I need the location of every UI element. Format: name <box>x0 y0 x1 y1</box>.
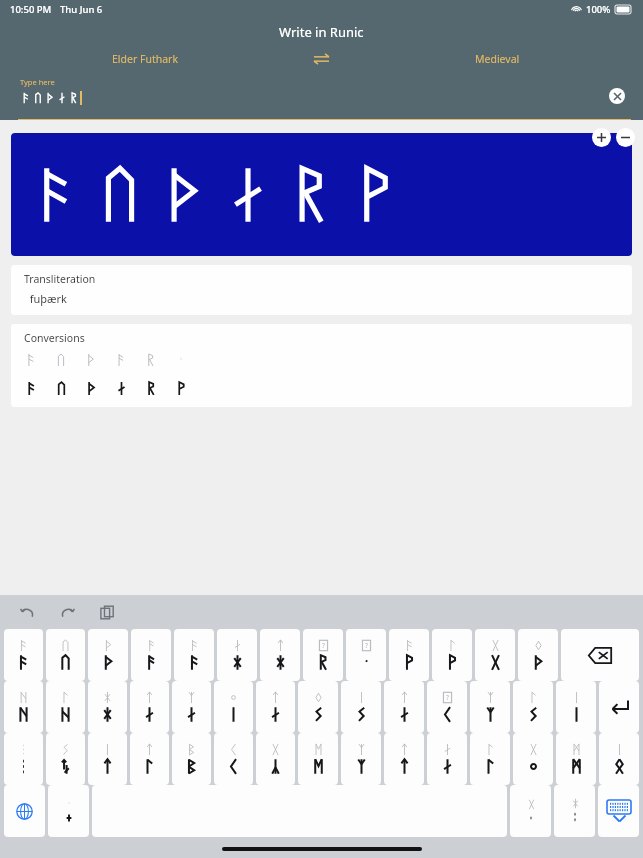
staticText: ? <box>365 641 368 650</box>
button[interactable] <box>556 733 596 785</box>
button[interactable] <box>46 733 85 785</box>
button[interactable] <box>256 733 295 785</box>
button[interactable] <box>88 629 128 681</box>
button[interactable] <box>518 629 558 681</box>
button[interactable]: Elder Futhark <box>0 46 291 72</box>
button[interactable]: Return <box>599 681 639 733</box>
staticText: ? <box>446 693 449 702</box>
button[interactable] <box>172 733 211 785</box>
button[interactable] <box>513 733 553 785</box>
button[interactable] <box>48 785 89 837</box>
button[interactable] <box>513 681 553 733</box>
button[interactable]: Backspace <box>561 629 639 681</box>
button[interactable]: Switch keyboard language <box>4 785 45 837</box>
button[interactable]: Increase size <box>592 128 611 147</box>
button[interactable] <box>88 733 127 785</box>
button[interactable] <box>4 733 43 785</box>
button[interactable] <box>4 681 43 733</box>
button[interactable] <box>217 629 257 681</box>
button[interactable] <box>599 733 639 785</box>
button[interactable]: Redo <box>56 601 78 623</box>
button[interactable]: Clear text <box>609 88 625 104</box>
button[interactable]: Conversions <box>11 324 632 407</box>
staticText: Type here <box>20 77 55 87</box>
button[interactable] <box>470 681 510 733</box>
button[interactable] <box>470 733 510 785</box>
button[interactable] <box>427 733 467 785</box>
staticText: Conversions <box>24 331 85 345</box>
button[interactable] <box>256 681 295 733</box>
button[interactable]: Swap alphabets <box>291 46 351 72</box>
button[interactable] <box>475 629 515 681</box>
button[interactable] <box>389 629 429 681</box>
button[interactable] <box>130 681 169 733</box>
button[interactable] <box>4 629 43 681</box>
button[interactable]: Medieval <box>351 46 643 72</box>
button[interactable] <box>46 629 85 681</box>
button[interactable] <box>214 733 253 785</box>
button[interactable]: Hide keyboard <box>598 785 639 837</box>
staticText: 100% <box>586 3 611 16</box>
button[interactable] <box>260 629 300 681</box>
button[interactable] <box>556 681 596 733</box>
button[interactable] <box>88 681 127 733</box>
button[interactable] <box>432 629 472 681</box>
button[interactable]: ? <box>303 629 343 681</box>
button[interactable] <box>298 733 338 785</box>
button[interactable] <box>510 785 551 837</box>
button[interactable]: Decrease size <box>616 128 635 147</box>
button[interactable] <box>131 629 171 681</box>
button[interactable]: Copy <box>96 601 118 623</box>
button[interactable] <box>341 733 381 785</box>
button[interactable] <box>130 733 169 785</box>
button[interactable] <box>384 681 424 733</box>
button[interactable]: Undo <box>16 601 38 623</box>
button[interactable] <box>341 681 381 733</box>
staticText: Write in Runic <box>279 23 364 41</box>
button[interactable] <box>384 733 424 785</box>
staticText: ? <box>322 641 325 650</box>
staticText: 10:50 PM <box>10 3 52 16</box>
button[interactable]: Transliteration <box>11 265 632 315</box>
button[interactable] <box>46 681 85 733</box>
staticText: Transliteration <box>24 272 96 286</box>
button[interactable] <box>172 681 211 733</box>
staticText: Elder Futhark <box>112 52 179 66</box>
button[interactable] <box>298 681 338 733</box>
button[interactable] <box>174 629 214 681</box>
button[interactable] <box>554 785 595 837</box>
staticText: Thu Jun 6 <box>60 3 103 16</box>
button[interactable]: ? <box>427 681 467 733</box>
staticText: Medieval <box>475 52 520 66</box>
button[interactable] <box>214 681 253 733</box>
button[interactable]: ? <box>346 629 386 681</box>
staticText: fuþærk <box>24 291 67 306</box>
